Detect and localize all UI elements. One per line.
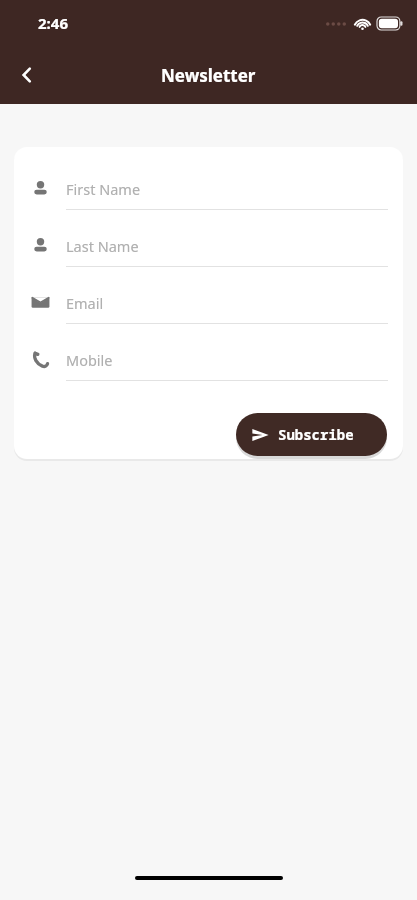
staticText: Mobile [66, 350, 113, 370]
button[interactable]: Subscribe [236, 413, 387, 456]
button[interactable]: Mobile [14, 339, 403, 396]
staticText: First Name [66, 179, 141, 199]
staticText: 2:46 [38, 13, 68, 33]
button[interactable]: First Name [14, 168, 403, 225]
staticText: Newsletter [161, 64, 256, 87]
button[interactable]: Back [6, 54, 48, 96]
staticText: Last Name [66, 236, 139, 256]
button[interactable]: Email [14, 282, 403, 339]
staticText: Subscribe [278, 425, 354, 444]
button[interactable]: Last Name [14, 225, 403, 282]
staticText: Email [66, 293, 104, 313]
